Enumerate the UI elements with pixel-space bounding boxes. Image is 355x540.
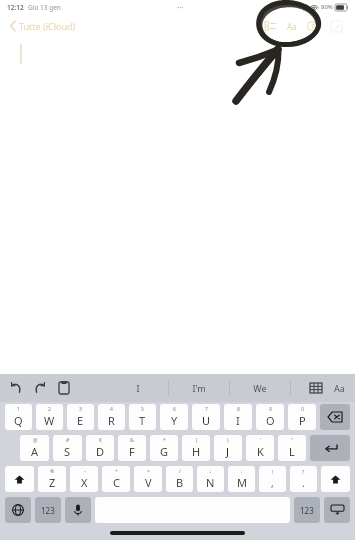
button[interactable]: 5 [129, 404, 156, 430]
button[interactable]: Checklist [259, 15, 281, 37]
staticText: E [77, 413, 84, 428]
button[interactable]: I'm [169, 374, 229, 402]
button[interactable]: ; [197, 466, 224, 492]
button[interactable]: + [102, 466, 130, 492]
button[interactable]: % [38, 466, 66, 492]
staticText: 7 [205, 406, 208, 413]
button[interactable]: Backspace [320, 404, 350, 430]
staticText: M [237, 475, 247, 490]
button[interactable]: Paste [54, 378, 74, 398]
button[interactable]: Format [281, 15, 303, 37]
staticText: 9 [269, 406, 272, 413]
button[interactable]: 9 [256, 404, 284, 430]
staticText: 5 [141, 406, 144, 413]
button[interactable]: ) [214, 435, 242, 461]
button[interactable]: 7 [192, 404, 220, 430]
button[interactable]: Tutte (iCloud) [8, 17, 78, 35]
staticText: G [160, 444, 169, 459]
staticText: Aa [334, 382, 345, 394]
staticText: V [145, 475, 152, 490]
staticText: 6 [173, 406, 176, 413]
staticText: X [81, 475, 88, 490]
button[interactable]: Dictation [65, 497, 91, 523]
button[interactable]: € [86, 435, 114, 461]
button[interactable]: Text format [329, 378, 349, 398]
staticText: L [289, 444, 295, 459]
button[interactable]: 6 [160, 404, 188, 430]
button[interactable]: Undo [6, 378, 26, 398]
staticText: Gio 13 gen [28, 3, 61, 12]
button[interactable]: * [150, 435, 178, 461]
staticText: " [291, 437, 294, 444]
button[interactable]: / [166, 466, 193, 492]
button[interactable]: ! [259, 466, 286, 492]
staticText: P [299, 413, 306, 428]
button[interactable]: 4 [98, 404, 125, 430]
button[interactable]: Redo [30, 378, 50, 398]
staticText: & [130, 437, 134, 444]
button[interactable]: & [118, 435, 146, 461]
staticText: / [179, 468, 181, 475]
staticText: ( [196, 437, 198, 444]
staticText: W [44, 413, 55, 428]
staticText: N [206, 475, 215, 490]
button[interactable]: We [230, 374, 290, 402]
button[interactable]: 3 [67, 404, 94, 430]
button[interactable]: ? [290, 466, 317, 492]
staticText: , [271, 476, 274, 490]
button[interactable]: Shift left [5, 466, 34, 492]
button[interactable]: 1 [5, 404, 32, 430]
staticText: C [113, 475, 120, 490]
button[interactable]: Shift right [321, 466, 350, 492]
staticText: Aa [287, 21, 297, 32]
staticText: R [108, 413, 115, 428]
button[interactable]: = [134, 466, 162, 492]
staticText: I [136, 382, 140, 394]
button[interactable]: ( [182, 435, 210, 461]
button[interactable]: @ [20, 435, 49, 461]
button[interactable]: 0 [288, 404, 316, 430]
button[interactable]: 2 [36, 404, 63, 430]
button[interactable]: ' [246, 435, 274, 461]
staticText: D [96, 444, 105, 459]
button[interactable]: Numbers [294, 497, 320, 523]
staticText: % [50, 468, 55, 475]
button[interactable]: : [228, 466, 255, 492]
staticText: Z [49, 475, 56, 490]
staticText: K [257, 444, 264, 459]
staticText: We [253, 382, 267, 394]
staticText: 123 [41, 505, 55, 516]
staticText: ··· [177, 2, 184, 13]
staticText: 0 [301, 406, 304, 413]
staticText: = [147, 468, 150, 475]
staticText: Y [171, 413, 178, 428]
button[interactable]: Numbers [35, 497, 61, 523]
staticText: B [176, 475, 184, 490]
staticText: 123 [300, 505, 314, 516]
button[interactable]: Insert table [306, 378, 326, 398]
staticText: 3 [79, 406, 82, 413]
button[interactable]: New note [325, 15, 347, 37]
button[interactable]: Camera [303, 15, 325, 37]
button[interactable]: I [108, 374, 168, 402]
button[interactable]: Return [310, 435, 350, 461]
staticText: ; [210, 468, 212, 475]
staticText: 8 [237, 406, 240, 413]
button[interactable]: - [70, 466, 98, 492]
staticText: @ [33, 437, 38, 444]
button[interactable]: # [53, 435, 82, 461]
staticText: * [163, 437, 166, 444]
staticText: A [31, 444, 39, 459]
staticText: ! [272, 469, 274, 476]
staticText: ' [260, 437, 262, 444]
staticText: F [129, 444, 135, 459]
staticText: . [302, 476, 305, 490]
button[interactable]: " [278, 435, 306, 461]
staticText: I'm [192, 382, 206, 394]
staticText: # [66, 437, 70, 444]
button[interactable]: Language [5, 497, 31, 523]
staticText: U [202, 413, 211, 428]
button[interactable]: Hide keyboard [324, 497, 350, 523]
button[interactable]: 8 [224, 404, 252, 430]
